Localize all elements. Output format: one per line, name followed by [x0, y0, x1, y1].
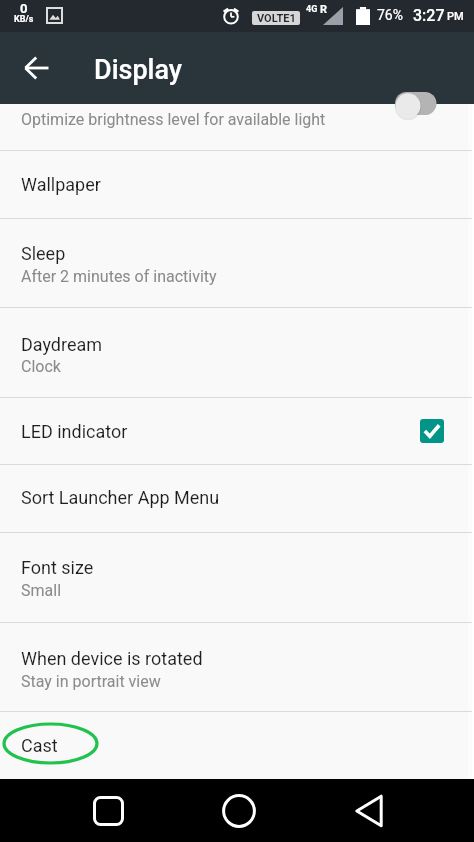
button[interactable]: Recent apps: [76, 779, 140, 842]
staticText: Optimize brightness level for available …: [21, 110, 326, 129]
staticText: LED indicator: [21, 421, 128, 442]
button[interactable]: Home: [207, 779, 271, 842]
staticText: 76%: [377, 7, 403, 23]
staticText: Wallpaper: [21, 174, 101, 195]
button[interactable]: Sort Launcher App Menu: [0, 465, 474, 532]
staticText: Sort Launcher App Menu: [21, 487, 220, 508]
button[interactable]: Cast: [0, 712, 474, 779]
staticText: KB/s: [14, 14, 34, 25]
staticText: Daydream: [21, 334, 103, 355]
button[interactable]: Font size: [0, 533, 474, 622]
button[interactable]: Back: [12, 44, 60, 92]
staticText: Stay in portrait view: [21, 672, 161, 691]
staticText: 4G: [306, 4, 318, 15]
button[interactable]: LED indicator: [0, 398, 474, 464]
button[interactable]: Back: [337, 779, 401, 842]
staticText: Sleep: [21, 243, 66, 264]
button[interactable]: When device is rotated: [0, 623, 474, 711]
button[interactable]: Daydream: [0, 308, 474, 397]
staticText: VOLTE1: [257, 12, 296, 25]
button[interactable]: Sleep: [0, 219, 474, 307]
staticText: 3:27: [413, 6, 445, 25]
staticText: 0: [20, 1, 28, 16]
staticText: Display: [94, 54, 183, 86]
staticText: PM: [447, 10, 464, 23]
staticText: Cast: [21, 735, 58, 756]
staticText: Clock: [21, 357, 61, 376]
staticText: Font size: [21, 557, 94, 578]
button[interactable]: Wallpaper: [0, 151, 474, 218]
button[interactable]: Optimize brightness level for available …: [0, 104, 474, 150]
staticText: Small: [21, 581, 62, 600]
staticText: When device is rotated: [21, 648, 203, 669]
staticText: R: [320, 3, 328, 16]
staticText: After 2 minutes of inactivity: [21, 267, 217, 286]
